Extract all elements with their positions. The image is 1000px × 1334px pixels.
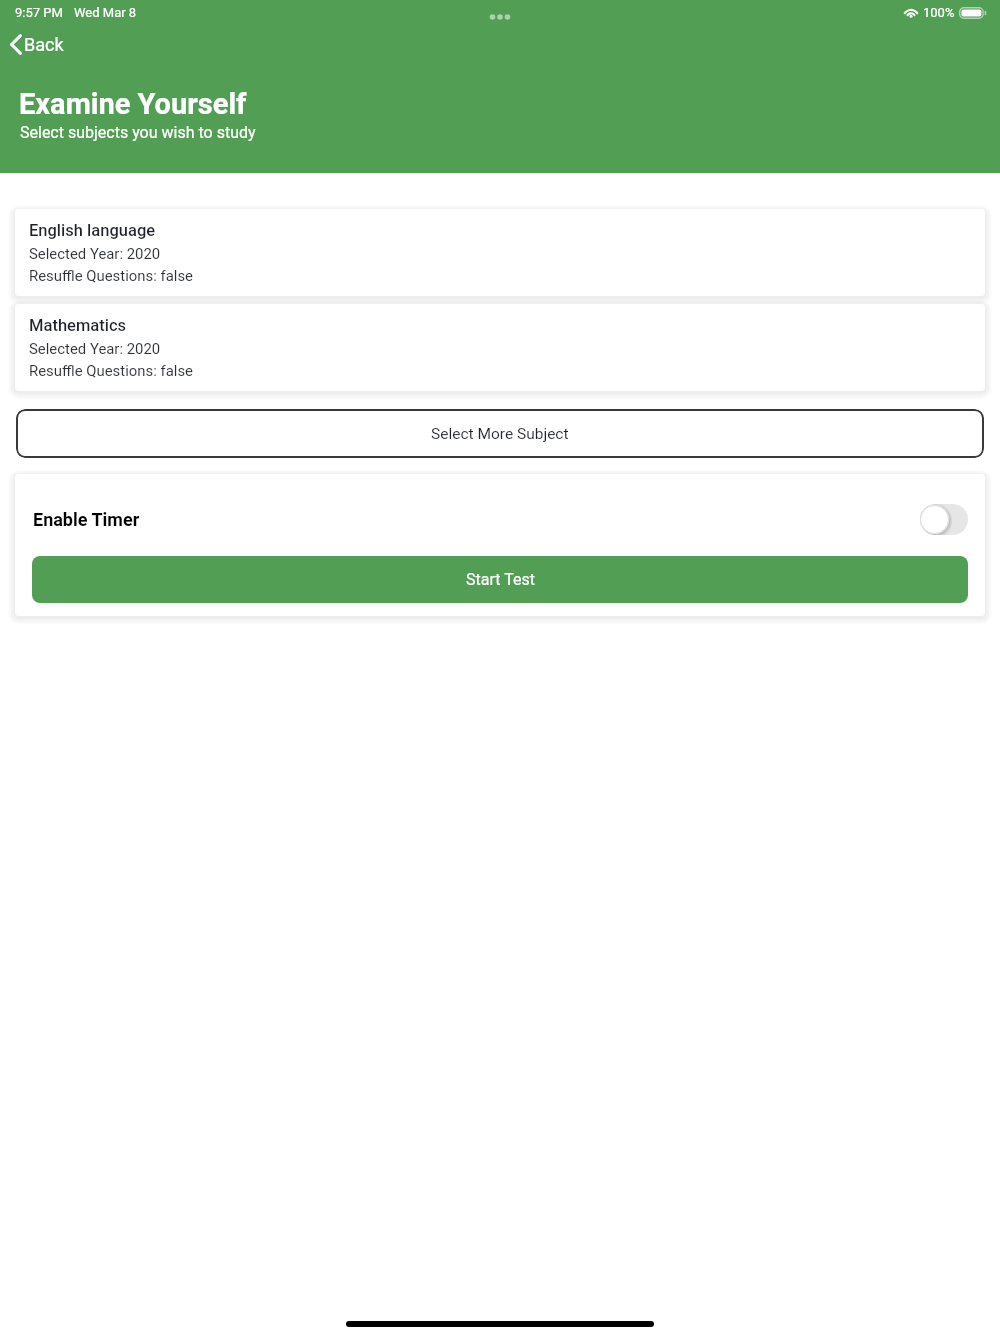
staticText: Resuffle Questions: false [29,267,193,284]
staticText: Wed Mar 8 [74,5,137,20]
button[interactable]: Enable Timer toggle [920,504,968,535]
button[interactable]: Mathematics [15,304,985,391]
staticText: Examine Yourself [19,87,247,121]
staticText: 9:57 PM [15,5,63,20]
staticText: Enable Timer [33,509,140,530]
button[interactable]: English language [15,209,985,296]
staticText: Select subjects you wish to study [20,123,256,142]
staticText: Mathematics [29,316,127,335]
staticText: Selected Year: 2020 [29,245,161,262]
staticText: Select More Subject [431,425,569,443]
button[interactable]: Back [6,32,68,57]
button[interactable]: Select More Subject [16,409,984,458]
staticText: Resuffle Questions: false [29,362,193,379]
button[interactable]: Start Test [32,556,968,603]
staticText: Back [24,34,64,55]
staticText: Selected Year: 2020 [29,340,161,357]
staticText: Start Test [466,570,535,589]
staticText: English language [29,221,156,240]
staticText: 100% [923,5,955,20]
